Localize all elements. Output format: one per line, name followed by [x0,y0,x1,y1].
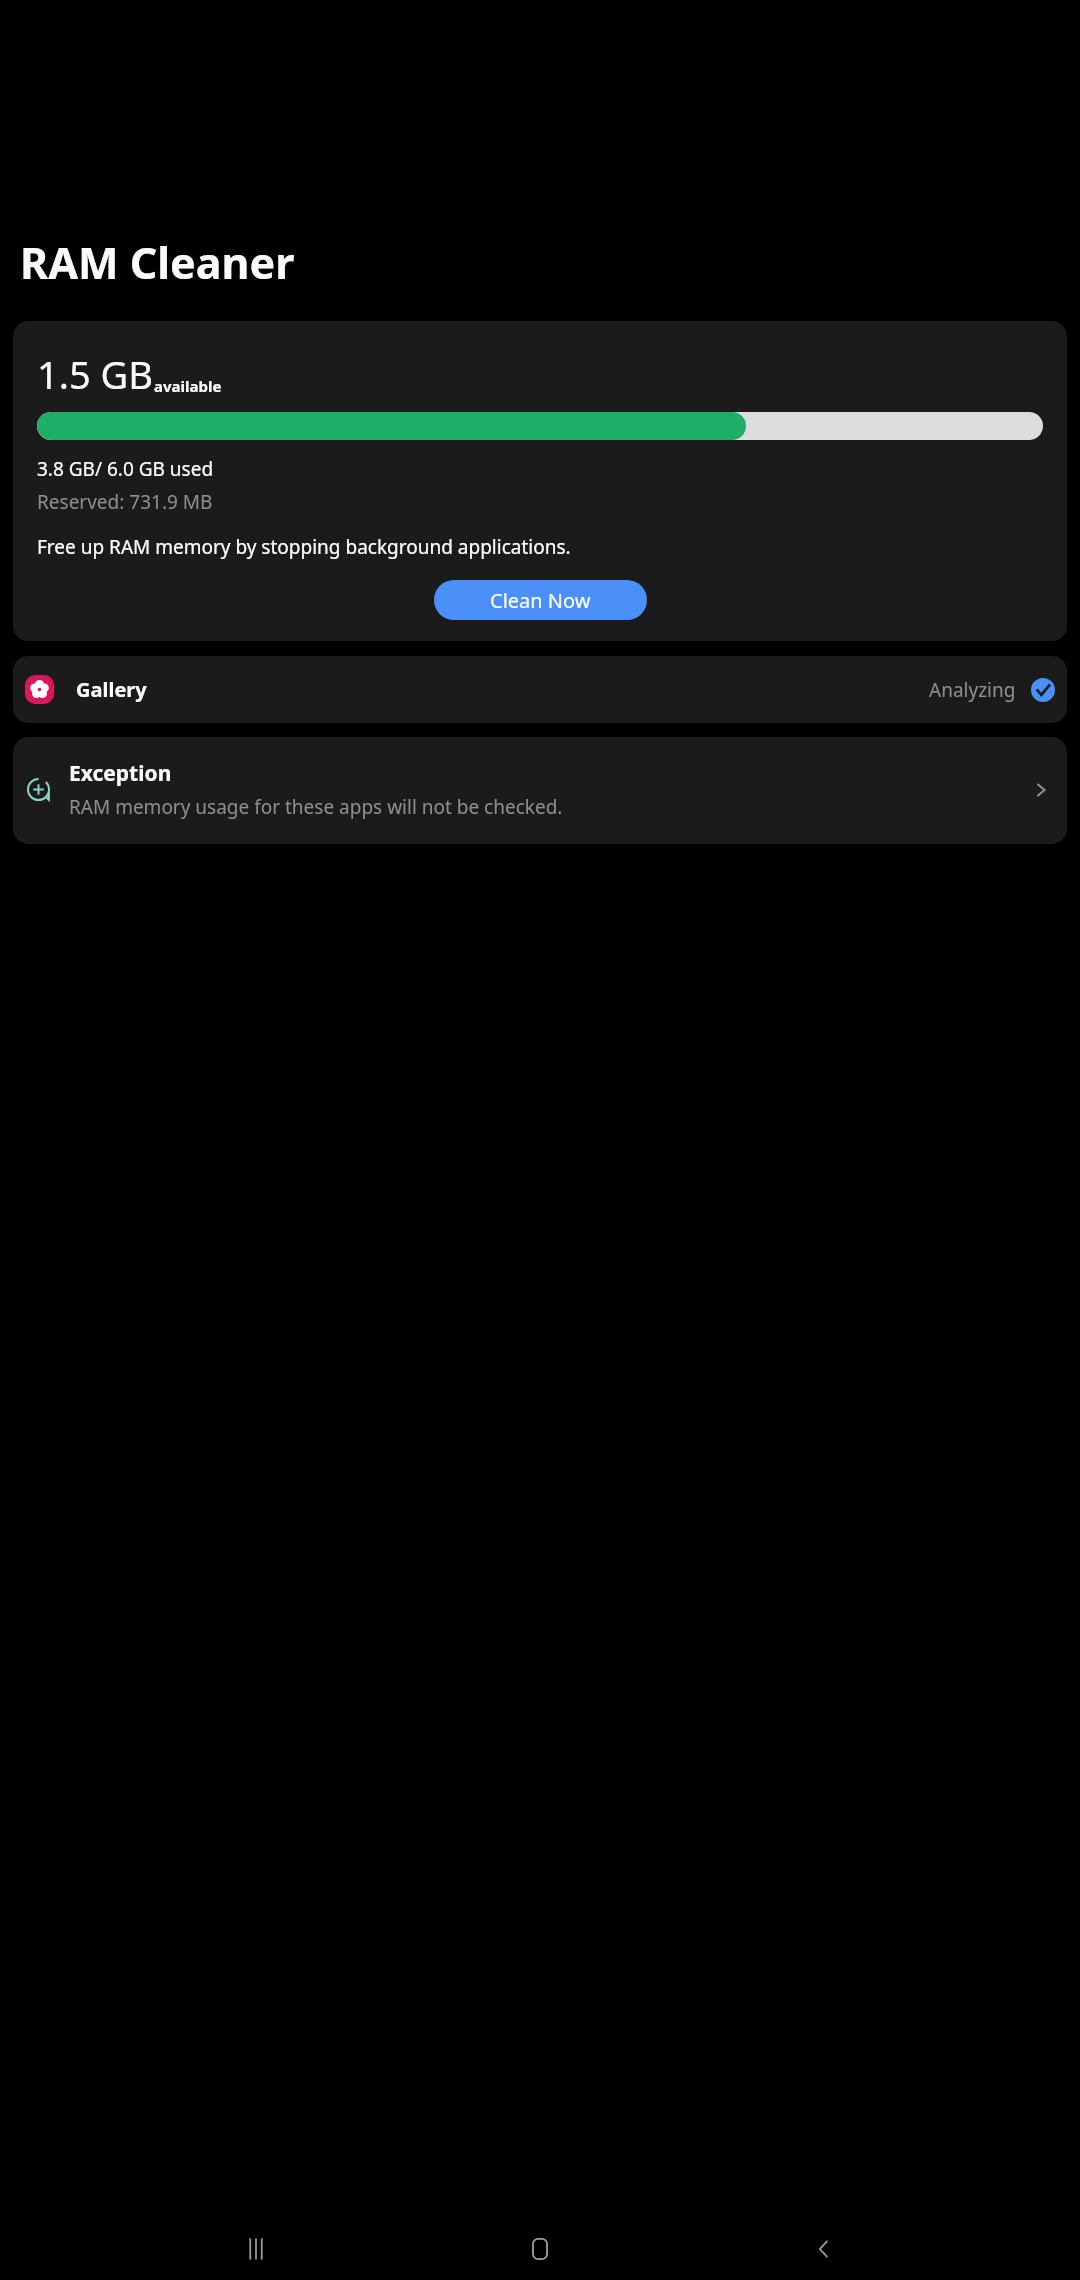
other: Analyzed [1031,678,1055,702]
button[interactable]: Back [796,2221,852,2277]
staticText: 1.5 GB [37,348,153,400]
staticText: Analyzing [929,677,1016,703]
button[interactable]: Gallery [13,656,1067,723]
staticText: 3.8 GB/ 6.0 GB used [37,456,214,482]
staticText: Gallery [76,676,147,703]
button[interactable]: Exception [13,737,1067,844]
button[interactable]: Clean Now [434,580,647,620]
button[interactable]: Recents [228,2221,284,2277]
staticText: available [154,376,222,396]
staticText: Reserved: 731.9 MB [37,489,213,515]
button[interactable]: Home [512,2221,568,2277]
staticText: Free up RAM memory by stopping backgroun… [37,534,571,560]
staticText: RAM memory usage for these apps will not… [69,794,563,820]
staticText: Clean Now [490,587,591,614]
staticText: RAM Cleaner [20,233,295,292]
staticText: Exception [69,759,172,788]
